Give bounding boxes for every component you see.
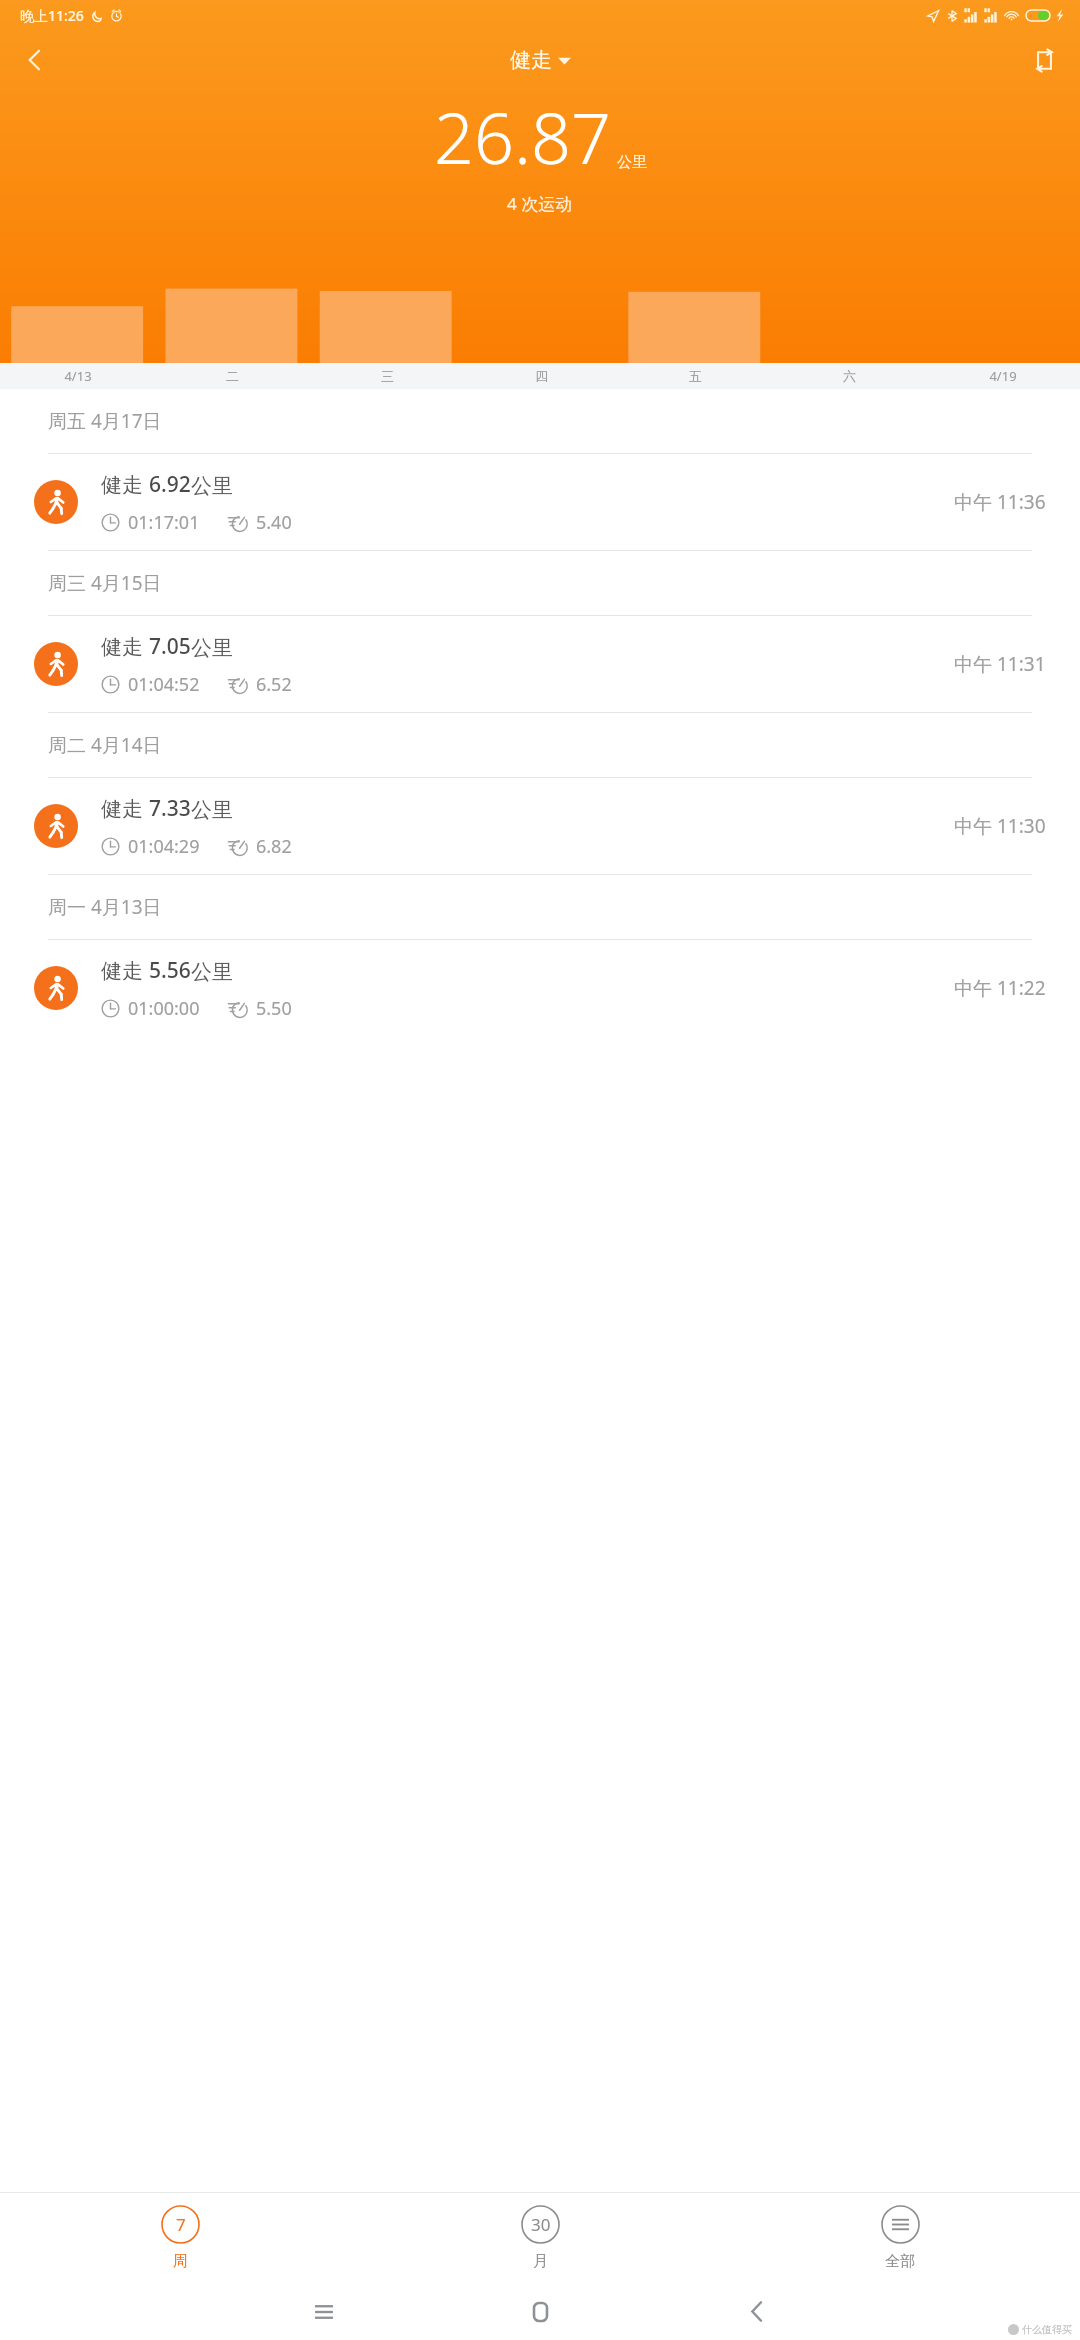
- staticText: 01:00:00: [128, 996, 200, 1021]
- staticText: 六: [843, 368, 856, 384]
- staticText: 7: [176, 2213, 186, 2236]
- staticText: 7.33: [149, 794, 191, 823]
- button[interactable]: 7: [0, 2193, 360, 2283]
- staticText: 中午 11:36: [954, 489, 1046, 515]
- button[interactable]: Home: [432, 2283, 648, 2340]
- staticText: 全部: [885, 2252, 915, 2271]
- button[interactable]: 30: [360, 2193, 720, 2283]
- staticText: 5.40: [256, 510, 292, 535]
- staticText: 周一 4月13日: [48, 894, 162, 920]
- staticText: 公里: [191, 959, 233, 985]
- staticText: 公里: [191, 473, 233, 499]
- staticText: 26.87: [434, 89, 611, 184]
- staticText: 4/13: [64, 367, 92, 385]
- staticText: 6.52: [256, 672, 292, 697]
- staticText: 公里: [191, 635, 233, 661]
- staticText: 晚上11:26: [20, 6, 84, 25]
- staticText: 4 次运动: [507, 192, 573, 215]
- button[interactable]: Back: [8, 33, 62, 87]
- staticText: 7.05: [149, 632, 191, 661]
- button[interactable]: Recent apps: [216, 2283, 432, 2340]
- button[interactable]: 健走: [0, 778, 1080, 874]
- staticText: 健走: [101, 956, 149, 985]
- button[interactable]: 健走: [0, 616, 1080, 712]
- staticText: 5.50: [256, 996, 292, 1021]
- staticText: 什么值得买: [1022, 2323, 1072, 2336]
- staticText: 健走: [101, 632, 149, 661]
- staticText: 四: [535, 368, 548, 384]
- staticText: 中午 11:30: [954, 813, 1046, 839]
- staticText: 公里: [617, 153, 647, 172]
- staticText: 五: [689, 368, 702, 384]
- staticText: 30: [531, 2213, 551, 2236]
- staticText: 5.56: [149, 956, 191, 985]
- staticText: 周三 4月15日: [48, 570, 162, 596]
- staticText: 健走: [510, 47, 552, 73]
- staticText: 01:04:29: [128, 834, 200, 859]
- staticText: 月: [533, 2252, 548, 2271]
- staticText: 中午 11:31: [954, 651, 1046, 677]
- staticText: 01:04:52: [128, 672, 200, 697]
- button[interactable]: 全部: [720, 2193, 1080, 2283]
- staticText: 周: [173, 2252, 188, 2271]
- button[interactable]: Back: [648, 2283, 864, 2340]
- button[interactable]: 健走: [0, 454, 1080, 550]
- staticText: 健走: [101, 470, 149, 499]
- staticText: 健走: [101, 794, 149, 823]
- staticText: 6.82: [256, 834, 292, 859]
- staticText: 周五 4月17日: [48, 408, 162, 434]
- button[interactable]: Sync: [1018, 34, 1070, 86]
- staticText: 01:17:01: [128, 510, 200, 535]
- staticText: 6.92: [149, 470, 191, 499]
- staticText: 三: [381, 368, 394, 384]
- staticText: 周二 4月14日: [48, 732, 162, 758]
- staticText: 二: [226, 368, 239, 384]
- staticText: 4/19: [989, 367, 1017, 385]
- button[interactable]: 健走: [500, 41, 581, 79]
- staticText: 中午 11:22: [954, 975, 1046, 1001]
- button[interactable]: 健走: [0, 940, 1080, 1036]
- staticText: 公里: [191, 797, 233, 823]
